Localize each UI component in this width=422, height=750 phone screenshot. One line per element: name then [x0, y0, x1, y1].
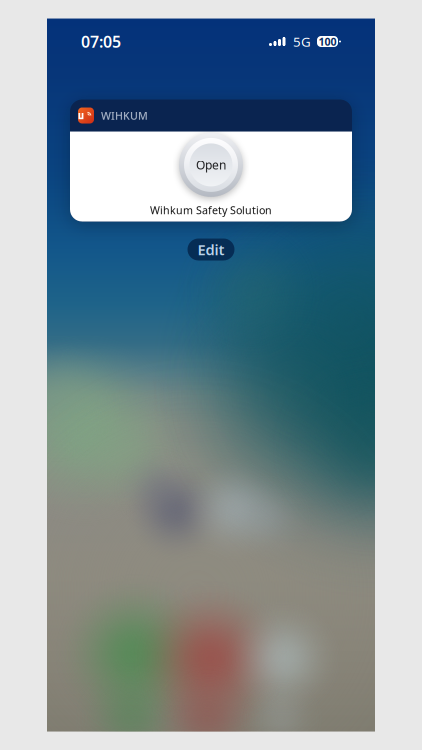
staticText: Open [196, 157, 226, 173]
staticText: Edit [197, 240, 224, 259]
staticText: 5G [293, 33, 311, 50]
staticText: Wihkum Safety Solution [150, 203, 272, 217]
button[interactable]: Edit [187, 238, 234, 260]
staticText: WIHKUM [101, 108, 148, 123]
staticText: 07:05 [81, 31, 121, 52]
button[interactable]: Open [179, 133, 243, 197]
staticText: 100 [318, 34, 336, 49]
